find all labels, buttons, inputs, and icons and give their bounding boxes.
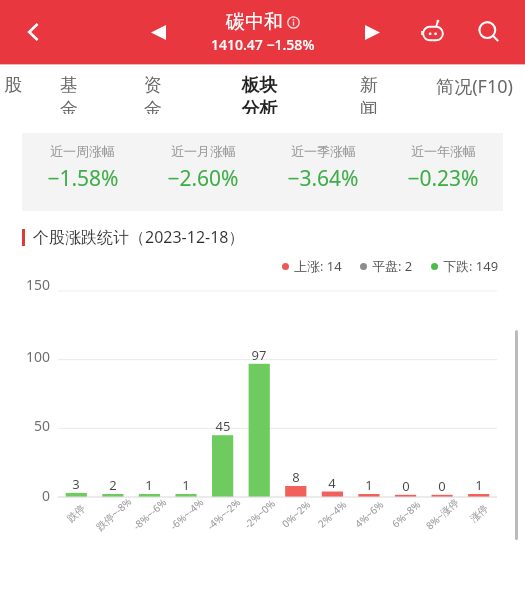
staticText: 近一年涨幅 (411, 143, 476, 159)
button[interactable]: Back (14, 12, 54, 52)
staticText: -6%~-4% (167, 495, 206, 533)
staticText: 0 (428, 477, 456, 495)
button[interactable]: 股 (4, 74, 15, 114)
staticText: 0%~2% (279, 497, 313, 531)
staticText: 150 (8, 275, 50, 294)
staticText: 近一季涨幅 (291, 143, 356, 159)
staticText: -8%~-6% (130, 495, 169, 533)
staticText: −2.60% (167, 164, 239, 193)
button[interactable]: 近一周涨幅 (22, 143, 143, 193)
button[interactable]: 下跌: 149 (431, 257, 499, 275)
staticText: 上涨: 14 (294, 257, 342, 275)
staticText: −0.23% (407, 164, 479, 193)
staticText: 涨停 (467, 502, 491, 525)
button[interactable]: 近一季涨幅 (263, 143, 383, 193)
staticText: 下跌: 149 (443, 257, 499, 275)
staticText: 资金 (142, 74, 164, 114)
staticText: 1 (355, 476, 383, 494)
button[interactable]: 碳中和 (211, 10, 315, 54)
button[interactable]: 近一月涨幅 (143, 143, 263, 193)
staticText: 8%~涨停 (422, 495, 462, 533)
button[interactable]: 平盘: 2 (360, 257, 413, 275)
staticText: 97 (245, 346, 273, 364)
staticText: 45 (209, 417, 237, 435)
staticText: 新闻 (358, 74, 380, 114)
staticText: 个股涨跌统计（2023-12-18） (33, 226, 245, 248)
staticText: 板块分析 (237, 74, 282, 114)
staticText: 近一月涨幅 (171, 143, 236, 159)
staticText: 2%~4% (315, 497, 349, 531)
staticText: 3 (62, 475, 90, 493)
staticText: 股 (4, 74, 15, 97)
staticText: 近一周涨幅 (50, 143, 115, 159)
staticText: −1.58% (47, 164, 119, 193)
staticText: 1 (135, 476, 163, 494)
staticText: 2 (99, 476, 127, 494)
staticText: 0 (392, 477, 420, 495)
button[interactable]: 基金 (58, 74, 80, 114)
staticText: 简况(F10) (436, 74, 513, 99)
staticText: 1410.47 −1.58% (211, 35, 315, 54)
button[interactable]: Next sector (354, 14, 390, 50)
staticText: 8 (282, 468, 310, 486)
staticText: −3.64% (287, 164, 359, 193)
button[interactable]: 个股涨跌统计（2023-12-18） (0, 225, 525, 249)
staticText: 0 (8, 486, 50, 505)
staticText: 6%~8% (389, 497, 423, 531)
staticText: 4 (318, 474, 346, 492)
button[interactable]: 资金 (142, 74, 164, 114)
staticText: 1 (465, 476, 493, 494)
button[interactable]: 简况(F10) (435, 74, 513, 114)
button[interactable]: 近一年涨幅 (383, 143, 503, 193)
staticText: -2%~0% (241, 496, 278, 532)
button[interactable]: Previous sector (140, 14, 176, 50)
staticText: 跌停~-8% (93, 494, 134, 534)
staticText: 4%~6% (352, 497, 386, 531)
button[interactable]: Assistant (413, 12, 453, 52)
button[interactable]: Search (469, 12, 509, 52)
staticText: 平盘: 2 (372, 257, 413, 275)
staticText: 跌停 (64, 502, 88, 525)
button[interactable]: 新闻 (358, 74, 380, 114)
staticText: 基金 (58, 74, 80, 114)
staticText: 碳中和 (226, 10, 283, 34)
staticText: 50 (8, 416, 50, 435)
staticText: 100 (8, 347, 50, 366)
button[interactable]: 板块分析 (237, 74, 282, 114)
staticText: -4%~-2% (204, 495, 243, 533)
button[interactable]: 上涨: 14 (282, 257, 342, 275)
staticText: 1 (172, 476, 200, 494)
